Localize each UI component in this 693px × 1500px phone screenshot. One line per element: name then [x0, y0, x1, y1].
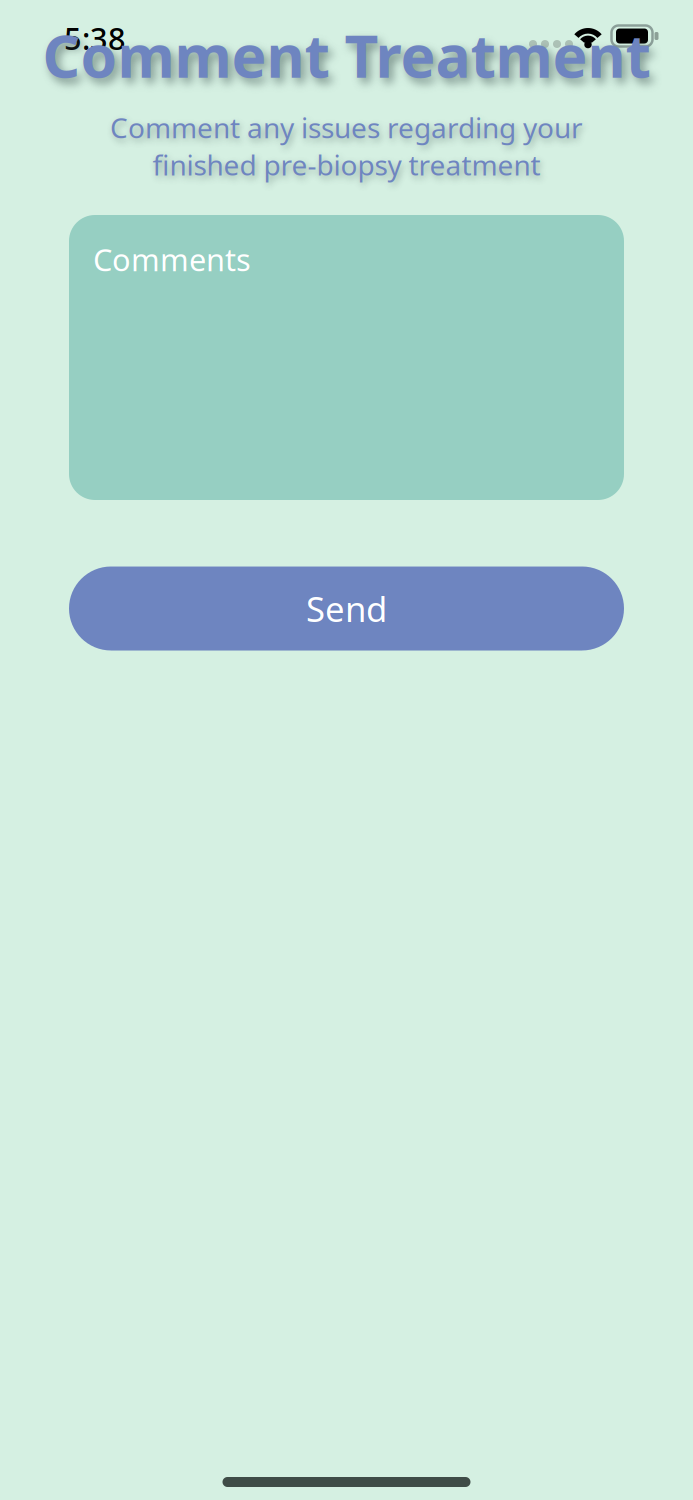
staticText: 5:38 — [64, 18, 126, 58]
staticText: Comment any issues regarding your — [110, 109, 583, 146]
button[interactable]: Send — [69, 566, 624, 650]
button[interactable]: Comments — [69, 215, 624, 500]
staticText: Comment Treatment — [42, 16, 650, 94]
staticText: finished pre-biopsy treatment — [152, 146, 540, 183]
staticText: Comments — [93, 239, 251, 280]
staticText: Send — [306, 585, 387, 631]
